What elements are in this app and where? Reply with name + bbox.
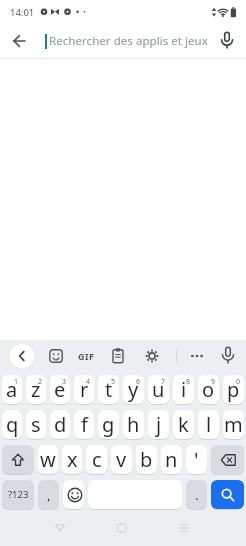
staticText: GIF <box>78 350 95 362</box>
staticText: 2 <box>38 377 43 387</box>
button[interactable]: , <box>38 480 59 509</box>
staticText: 3 <box>62 377 67 387</box>
button[interactable]: t <box>98 375 119 404</box>
button[interactable]: l <box>198 410 219 439</box>
staticText: x <box>67 446 78 473</box>
button[interactable]: a <box>2 375 22 404</box>
staticText: w <box>40 446 56 473</box>
staticText: 1 <box>14 377 19 387</box>
button[interactable]: ?123 <box>2 480 34 509</box>
staticText: u <box>152 376 165 403</box>
staticText: 7 <box>161 377 166 387</box>
staticText: . <box>195 486 199 504</box>
button[interactable]: w <box>38 445 58 474</box>
button[interactable]: h <box>123 410 144 439</box>
staticText: f <box>81 411 88 438</box>
staticText: i <box>181 376 187 403</box>
staticText: e <box>54 376 66 403</box>
button[interactable] <box>44 344 68 368</box>
button[interactable]: n <box>161 445 182 474</box>
staticText: Rechercher des applis et jeux <box>49 33 208 49</box>
button[interactable] <box>211 480 244 509</box>
button[interactable] <box>2 445 34 474</box>
staticText: s <box>31 411 41 438</box>
button[interactable] <box>216 344 240 368</box>
button[interactable] <box>185 344 209 368</box>
staticText: , <box>47 486 51 504</box>
staticText: n <box>165 446 178 473</box>
staticText: a <box>6 376 18 403</box>
button[interactable]: . <box>186 480 207 509</box>
button[interactable]: r <box>74 375 94 404</box>
button[interactable] <box>10 344 34 368</box>
button[interactable]: c <box>86 445 107 474</box>
button[interactable]: e <box>50 375 70 404</box>
button[interactable]: ' <box>186 445 207 474</box>
button[interactable]: z <box>26 375 46 404</box>
button[interactable]: o <box>198 375 219 404</box>
button[interactable] <box>110 516 134 540</box>
button[interactable]: x <box>62 445 82 474</box>
button[interactable]: j <box>148 410 169 439</box>
button[interactable]: v <box>111 445 132 474</box>
button[interactable] <box>63 480 84 509</box>
button[interactable] <box>48 516 72 540</box>
button[interactable] <box>208 24 246 58</box>
staticText: q <box>6 411 19 438</box>
button[interactable] <box>106 344 130 368</box>
button[interactable]: y <box>123 375 144 404</box>
staticText: 4 <box>86 377 91 387</box>
button[interactable]: s <box>26 410 46 439</box>
staticText: v <box>116 446 127 473</box>
button[interactable] <box>172 516 196 540</box>
staticText: ' <box>194 446 199 473</box>
button[interactable]: GIF <box>72 344 100 368</box>
button[interactable]: u <box>148 375 169 404</box>
staticText: 14:01 <box>10 6 35 19</box>
button[interactable]: i <box>173 375 194 404</box>
staticText: p <box>227 376 240 403</box>
staticText: m <box>224 411 243 438</box>
button[interactable]: d <box>50 410 70 439</box>
staticText: y <box>128 376 139 403</box>
staticText: 5 <box>111 377 116 387</box>
staticText: 0 <box>236 377 241 387</box>
button[interactable]: k <box>173 410 194 439</box>
button[interactable]: f <box>74 410 94 439</box>
staticText: o <box>202 376 215 403</box>
staticText: h <box>127 411 140 438</box>
staticText: r <box>80 376 89 403</box>
staticText: c <box>92 446 102 473</box>
button[interactable]: g <box>98 410 119 439</box>
button[interactable] <box>0 24 40 58</box>
staticText: ?123 <box>8 488 29 501</box>
staticText: b <box>140 446 153 473</box>
staticText: k <box>178 411 189 438</box>
staticText: g <box>102 411 115 438</box>
staticText: t <box>105 376 113 403</box>
staticText: 6 <box>136 377 141 387</box>
button[interactable] <box>211 445 244 474</box>
button[interactable]: m <box>223 410 244 439</box>
staticText: 8 <box>186 377 191 387</box>
staticText: j <box>156 411 162 438</box>
button[interactable]: q <box>2 410 22 439</box>
staticText: d <box>54 411 67 438</box>
button[interactable]: b <box>136 445 157 474</box>
button[interactable]: p <box>223 375 244 404</box>
button[interactable] <box>140 344 164 368</box>
staticText: l <box>206 411 212 438</box>
staticText: z <box>31 376 41 403</box>
staticText: 9 <box>211 377 216 387</box>
